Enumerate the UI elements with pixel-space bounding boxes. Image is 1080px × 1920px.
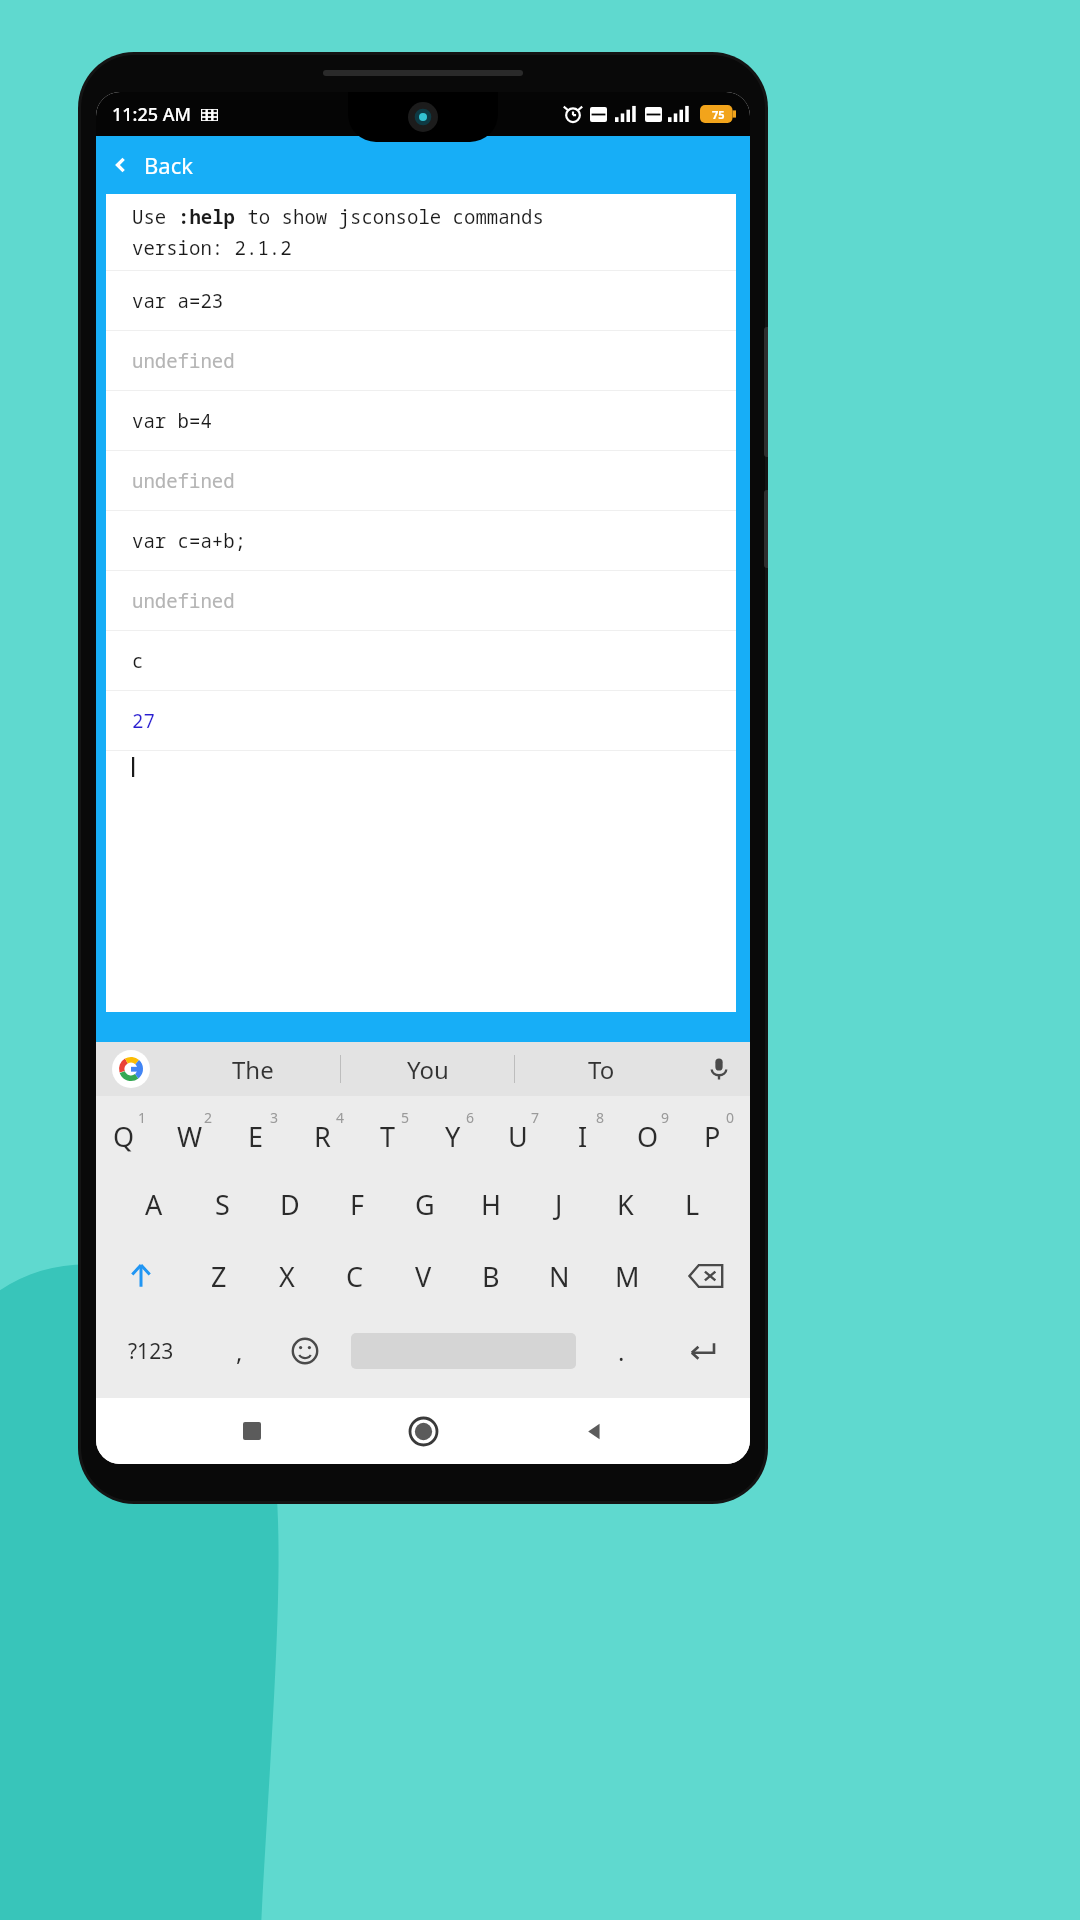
- staticText: K: [617, 1186, 634, 1223]
- button[interactable]: var c=a+b;: [106, 511, 736, 570]
- staticText: :help: [178, 204, 236, 230]
- button[interactable]: A: [120, 1168, 188, 1240]
- staticText: J: [555, 1186, 563, 1223]
- button[interactable]: U: [490, 1096, 555, 1168]
- button[interactable]: You: [341, 1042, 514, 1096]
- button[interactable]: The: [166, 1042, 340, 1096]
- button[interactable]: Shift: [96, 1240, 185, 1312]
- staticText: .: [618, 1335, 625, 1368]
- staticText: P: [704, 1118, 721, 1155]
- staticText: var c=a+b;: [132, 528, 247, 554]
- staticText: V: [415, 1258, 432, 1295]
- button[interactable]: undefined: [106, 451, 736, 510]
- staticText: B: [482, 1258, 500, 1295]
- staticText: The: [232, 1053, 274, 1086]
- button[interactable]: .: [588, 1312, 654, 1390]
- button[interactable]: Back: [562, 1399, 626, 1463]
- button[interactable]: L: [659, 1168, 726, 1240]
- staticText: undefined: [132, 588, 235, 614]
- button[interactable]: B: [457, 1240, 525, 1312]
- button[interactable]: C: [321, 1240, 389, 1312]
- button[interactable]: To: [515, 1042, 688, 1096]
- button[interactable]: X: [253, 1240, 321, 1312]
- staticText: Back: [144, 150, 193, 180]
- button[interactable]: Home: [391, 1399, 455, 1463]
- button[interactable]: Emoji: [272, 1312, 338, 1390]
- staticText: 9: [661, 1108, 670, 1127]
- staticText: L: [685, 1186, 700, 1223]
- staticText: 75: [712, 107, 725, 122]
- button[interactable]: P: [685, 1096, 750, 1168]
- button[interactable]: D: [256, 1168, 324, 1240]
- button[interactable]: undefined: [106, 331, 736, 390]
- staticText: E: [248, 1118, 264, 1155]
- button[interactable]: Recents: [220, 1399, 284, 1463]
- staticText: to show jsconsole commands: [236, 204, 544, 230]
- button[interactable]: var b=4: [106, 391, 736, 450]
- staticText: T: [380, 1118, 396, 1155]
- staticText: R: [314, 1118, 331, 1155]
- button[interactable]: [338, 1312, 588, 1390]
- staticText: undefined: [132, 348, 235, 374]
- button[interactable]: J: [525, 1168, 592, 1240]
- staticText: D: [280, 1186, 300, 1223]
- button[interactable]: 27: [106, 691, 736, 750]
- staticText: 27: [132, 708, 155, 734]
- staticText: 3: [270, 1108, 279, 1127]
- button[interactable]: [106, 751, 736, 783]
- button[interactable]: undefined: [106, 571, 736, 630]
- button[interactable]: H: [458, 1168, 525, 1240]
- staticText: O: [637, 1118, 659, 1155]
- button[interactable]: Enter: [654, 1312, 750, 1390]
- button[interactable]: Use: [106, 194, 736, 270]
- staticText: To: [588, 1053, 615, 1086]
- button[interactable]: ,: [206, 1312, 272, 1390]
- staticText: You: [407, 1053, 449, 1086]
- staticText: version: 2.1.2: [132, 235, 292, 261]
- staticText: I: [578, 1118, 588, 1155]
- button[interactable]: c: [106, 631, 736, 690]
- staticText: A: [145, 1186, 163, 1223]
- button[interactable]: I: [555, 1096, 620, 1168]
- button[interactable]: N: [525, 1240, 593, 1312]
- button[interactable]: Voice input: [688, 1042, 750, 1096]
- button[interactable]: M: [593, 1240, 661, 1312]
- staticText: ,: [236, 1335, 243, 1368]
- button[interactable]: Google: [96, 1042, 166, 1096]
- button[interactable]: Y: [425, 1096, 490, 1168]
- staticText: c: [132, 648, 144, 674]
- button[interactable]: G: [391, 1168, 458, 1240]
- button[interactable]: Z: [185, 1240, 253, 1312]
- button[interactable]: Backspace: [661, 1240, 750, 1312]
- button[interactable]: Back: [96, 136, 750, 194]
- staticText: Q: [113, 1118, 135, 1155]
- button[interactable]: F: [324, 1168, 391, 1240]
- staticText: C: [346, 1258, 364, 1295]
- staticText: var b=4: [132, 408, 212, 434]
- button[interactable]: S: [188, 1168, 256, 1240]
- staticText: 1: [138, 1108, 147, 1127]
- button[interactable]: E: [228, 1096, 294, 1168]
- button[interactable]: W: [162, 1096, 228, 1168]
- button[interactable]: V: [389, 1240, 457, 1312]
- staticText: Use: [132, 204, 178, 230]
- button[interactable]: T: [360, 1096, 425, 1168]
- staticText: 6: [466, 1108, 475, 1127]
- staticText: S: [215, 1186, 230, 1223]
- button[interactable]: O: [620, 1096, 685, 1168]
- staticText: 11:25 AM: [112, 102, 192, 127]
- staticText: F: [350, 1186, 365, 1223]
- staticText: ?123: [128, 1337, 174, 1366]
- staticText: U: [508, 1118, 528, 1155]
- staticText: 7: [531, 1108, 540, 1127]
- button[interactable]: Q: [96, 1096, 162, 1168]
- staticText: var a=23: [132, 288, 224, 314]
- staticText: 2: [204, 1108, 213, 1127]
- staticText: H: [481, 1186, 502, 1223]
- button[interactable]: K: [592, 1168, 659, 1240]
- button[interactable]: ?123: [96, 1312, 206, 1390]
- staticText: 4: [336, 1108, 345, 1127]
- button[interactable]: R: [294, 1096, 360, 1168]
- staticText: N: [549, 1258, 570, 1295]
- button[interactable]: var a=23: [106, 271, 736, 330]
